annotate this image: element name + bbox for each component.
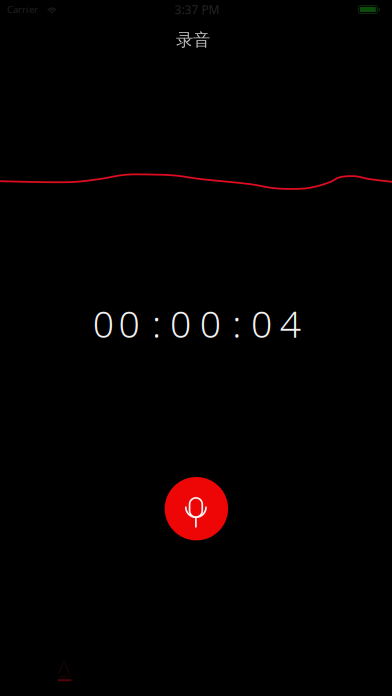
staticText: 4 [280, 298, 301, 348]
button[interactable]: Record [165, 477, 228, 540]
staticText: : [152, 298, 161, 348]
staticText: 3:37 PM [174, 1, 219, 17]
staticText: 0 [119, 298, 140, 348]
staticText: 录音 [176, 29, 210, 51]
staticText: : [232, 298, 241, 348]
staticText: 0 [200, 298, 221, 348]
staticText: 0 [170, 298, 191, 348]
staticText: Carrier [7, 3, 38, 16]
staticText: 0 [93, 298, 114, 348]
staticText: 0 [251, 298, 272, 348]
